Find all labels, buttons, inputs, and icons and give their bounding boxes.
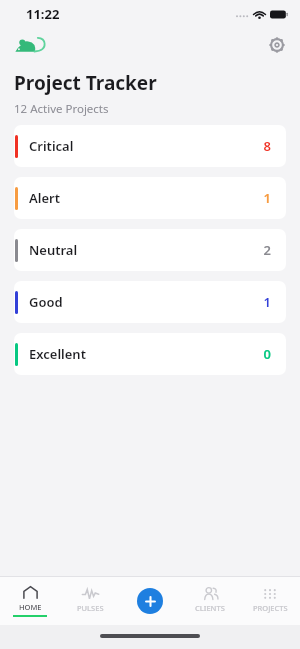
button[interactable]: Critical — [14, 125, 286, 167]
button[interactable]: Good — [14, 281, 286, 323]
staticText: Alert — [29, 189, 60, 207]
staticText: 2 — [263, 241, 271, 259]
button[interactable]: PULSES — [60, 577, 120, 625]
staticText: Project Tracker — [14, 70, 157, 96]
staticText: 1 — [263, 293, 271, 311]
staticText: CLIENTS — [195, 603, 225, 613]
staticText: PULSES — [77, 603, 104, 613]
button[interactable]: Alert — [14, 177, 286, 219]
staticText: Critical — [29, 137, 74, 155]
staticText: HOME — [19, 602, 42, 612]
button[interactable]: PROJECTS — [240, 577, 300, 625]
staticText: Neutral — [29, 241, 78, 259]
staticText: 1 — [263, 189, 271, 207]
button[interactable]: CLIENTS — [180, 577, 240, 625]
button[interactable]: Settings — [264, 32, 290, 58]
staticText: PROJECTS — [253, 603, 288, 613]
button[interactable]: HOME — [0, 577, 60, 625]
staticText: Excellent — [29, 345, 86, 363]
staticText: Good — [29, 293, 63, 311]
button[interactable]: Neutral — [14, 229, 286, 271]
staticText: 12 Active Projects — [14, 101, 109, 117]
staticText: 8 — [263, 137, 271, 155]
button[interactable]: Excellent — [14, 333, 286, 375]
staticText: 11:22 — [26, 5, 60, 23]
button[interactable]: Add — [137, 588, 163, 614]
staticText: 0 — [263, 345, 271, 363]
